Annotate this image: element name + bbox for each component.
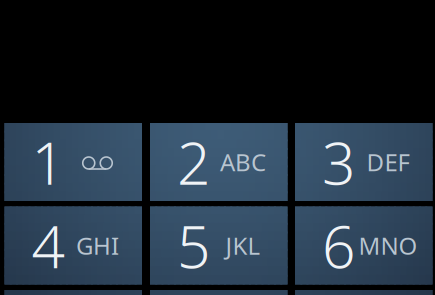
- button[interactable]: 6 MNO: [0, 0, 435, 295]
- staticText: 2: [177, 123, 210, 201]
- staticText: JKL: [225, 230, 260, 261]
- button[interactable]: 2 ABC: [0, 0, 435, 295]
- staticText: DEF: [366, 146, 409, 178]
- button[interactable]: 4 GHI: [0, 0, 435, 295]
- staticText: 3: [322, 123, 355, 201]
- staticText: 4: [31, 206, 64, 284]
- staticText: 6: [322, 206, 355, 284]
- staticText: 5: [177, 206, 210, 284]
- staticText: GHI: [76, 230, 119, 261]
- button[interactable]: 1: [0, 0, 435, 295]
- staticText: 1: [31, 123, 64, 201]
- button[interactable]: 9 WXYZ: [0, 0, 435, 295]
- button[interactable]: 3 DEF: [0, 0, 435, 295]
- button[interactable]: 5 JKL: [0, 0, 435, 295]
- button[interactable]: 7 PQRS: [0, 0, 435, 295]
- button[interactable]: 8 TUV: [0, 0, 435, 295]
- staticText: MNO: [358, 230, 417, 261]
- staticText: ABC: [220, 146, 266, 178]
